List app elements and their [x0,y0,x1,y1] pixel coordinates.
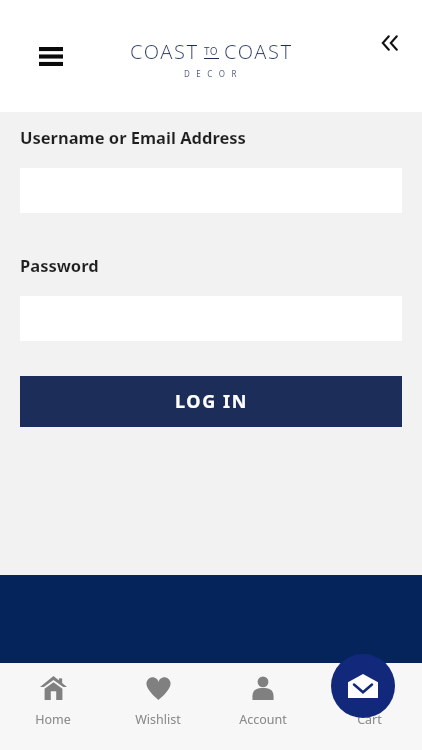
button[interactable]: Open navigation menu [30,35,72,77]
button[interactable]: Account [210,673,316,750]
staticText: Password [20,254,99,276]
button[interactable]: Messages [331,654,395,718]
staticText: Wishlist [135,711,181,728]
staticText: Username or Email Address [20,126,246,148]
staticText: Home [35,711,71,728]
staticText: COAST [130,38,199,65]
staticText: TO [204,44,219,58]
staticText: Account [239,711,287,728]
button[interactable]: Wishlist [105,673,210,750]
staticText: COAST [224,38,293,65]
button[interactable]: LOG IN [20,376,402,427]
staticText: D E C O R [184,68,239,79]
staticText: Cart [357,711,382,728]
button[interactable]: Cart [316,673,422,750]
button[interactable]: Home [0,673,105,750]
staticText: LOG IN [175,389,248,414]
button[interactable]: Collapse [370,21,414,65]
